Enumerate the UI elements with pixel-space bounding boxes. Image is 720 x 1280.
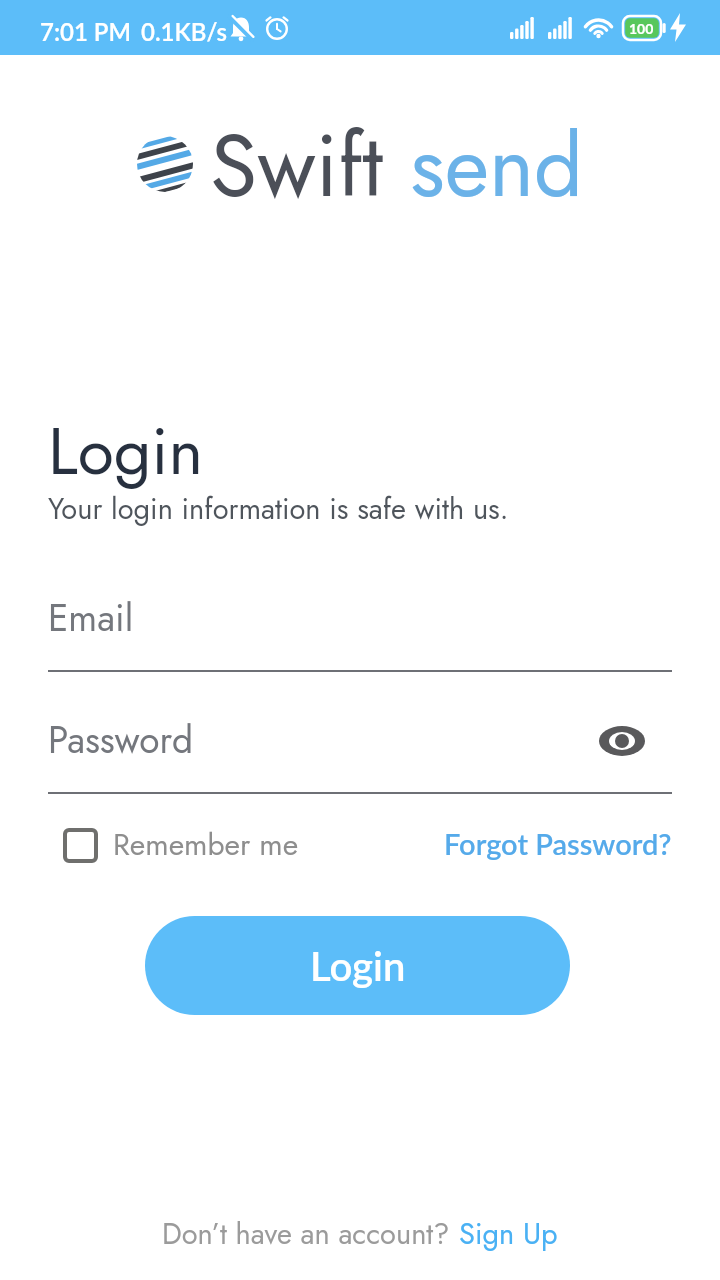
button[interactable]: Password <box>48 707 672 794</box>
button[interactable]: Email <box>48 585 672 672</box>
staticText: Login <box>48 403 204 498</box>
staticText: Swift <box>210 104 410 228</box>
button[interactable] <box>599 726 645 756</box>
staticText: 7:01 PM <box>40 17 131 46</box>
staticText: Password <box>48 713 194 766</box>
button[interactable]: Don’t have an account? <box>162 1213 558 1255</box>
button[interactable] <box>63 828 98 863</box>
staticText: Your login information is safe with us. <box>48 488 509 530</box>
staticText: Email <box>48 591 134 644</box>
staticText: Don’t have an account? <box>162 1213 459 1255</box>
staticText: 0.1KB/s <box>141 17 227 46</box>
button[interactable]: Login <box>145 916 570 1015</box>
button[interactable]: Forgot Password? <box>444 826 672 861</box>
staticText: send <box>410 104 584 228</box>
staticText: 100 <box>629 20 654 37</box>
staticText: Sign Up <box>459 1213 558 1255</box>
staticText: Login <box>310 942 406 990</box>
staticText: Remember me <box>113 823 299 866</box>
